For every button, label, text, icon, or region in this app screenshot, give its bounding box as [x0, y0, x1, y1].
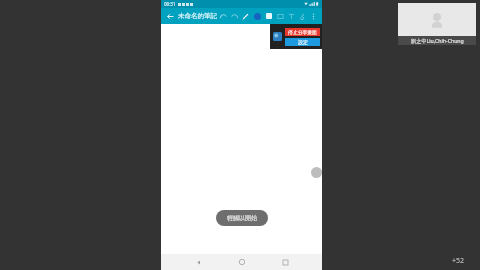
button[interactable]: Undo: [218, 11, 229, 22]
button[interactable]: Recents: [278, 255, 292, 269]
button[interactable]: Color: [251, 10, 263, 22]
button[interactable]: 停止分享畫面: [285, 28, 320, 36]
button[interactable]: More: [308, 11, 319, 22]
button[interactable]: Expand: [311, 167, 322, 178]
staticText: 設定: [298, 39, 308, 45]
staticText: 09:31: [164, 1, 176, 7]
button[interactable]: Pen: [240, 11, 251, 22]
staticText: 未命名的筆記: [178, 12, 217, 20]
staticText: 劉之中Liu,Chih-Chung: [411, 37, 464, 44]
button[interactable]: Shape: [275, 11, 286, 22]
button[interactable]: 設定: [285, 38, 320, 46]
button[interactable]: Attach: [297, 11, 308, 22]
button[interactable]: Text: [286, 11, 297, 22]
button[interactable]: Eraser: [263, 10, 275, 22]
button[interactable]: Home: [235, 255, 249, 269]
button[interactable]: Back: [164, 10, 176, 22]
staticText: +52: [452, 256, 465, 266]
button[interactable]: Redo: [229, 11, 240, 22]
staticText: 停止分享畫面: [288, 29, 317, 35]
staticText: 輕觸以開始: [227, 214, 257, 222]
button[interactable]: Back: [191, 255, 205, 269]
